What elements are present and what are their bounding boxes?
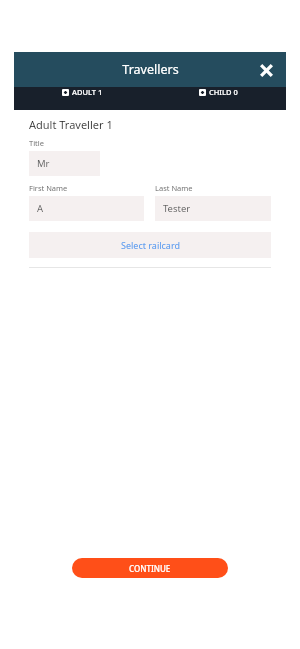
staticText: Adult Traveller 1 [29, 117, 113, 132]
button[interactable]: CONTINUE [72, 558, 228, 578]
staticText: Tester [163, 202, 191, 215]
staticText: A [37, 202, 44, 215]
staticText: Select railcard [121, 239, 180, 251]
button[interactable]: Tester [155, 196, 271, 221]
staticText: Travellers [122, 61, 179, 78]
button[interactable]: Select railcard [29, 232, 271, 258]
button[interactable]: CHILD 0 [150, 87, 286, 97]
button[interactable]: Close [254, 58, 278, 82]
button[interactable]: Mr [29, 151, 100, 176]
staticText: CONTINUE [129, 563, 171, 574]
button[interactable]: ADULT 1 [14, 87, 150, 97]
staticText: Mr [37, 157, 50, 170]
button[interactable]: A [29, 196, 144, 221]
staticText: Last Name [155, 183, 193, 193]
staticText: ADULT 1 [72, 87, 103, 97]
staticText: Title [29, 138, 44, 148]
staticText: First Name [29, 183, 68, 193]
staticText: CHILD 0 [209, 87, 238, 97]
